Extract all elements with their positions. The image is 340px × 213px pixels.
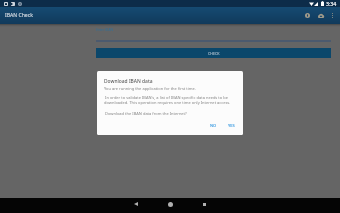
staticText: Enter IBAN — [96, 27, 114, 31]
staticText: Download the IBAN data from the Internet… — [104, 111, 187, 116]
button[interactable]: Download data — [314, 7, 327, 24]
staticText: CHECK — [208, 51, 220, 56]
staticText: You are running the application for the … — [104, 86, 196, 91]
button[interactable]: CHECK — [96, 48, 331, 58]
staticText: Download IBAN data — [104, 78, 153, 85]
button[interactable]: YES — [226, 122, 237, 129]
button[interactable]: More options — [326, 7, 338, 24]
button[interactable]: Info — [300, 7, 314, 24]
staticText: 3:34 — [326, 0, 337, 7]
button[interactable]: Home — [164, 198, 176, 210]
button[interactable]: Back — [130, 198, 142, 210]
staticText: In order to validate IBAN's, a list of I… — [104, 95, 243, 105]
staticText: NO — [210, 123, 217, 128]
button[interactable]: NO — [208, 122, 219, 129]
staticText: YES — [228, 123, 235, 128]
staticText: IBAN Check — [5, 12, 33, 19]
button[interactable]: Recent apps — [198, 198, 210, 210]
